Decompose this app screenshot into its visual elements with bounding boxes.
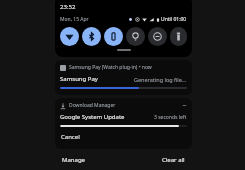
- staticText: Samsung Pay (Watch plug-in) • now: [69, 64, 152, 71]
- staticText: Download Manager: [69, 102, 116, 109]
- button[interactable]: Wi-Fi: [60, 27, 79, 46]
- button[interactable]: Flashlight: [170, 27, 187, 46]
- staticText: Until 01:00: [161, 16, 187, 23]
- button[interactable]: Cancel: [60, 132, 81, 142]
- staticText: 23:52: [60, 3, 76, 11]
- staticText: 3 seconds left: [154, 114, 187, 121]
- button[interactable]: Clear all: [160, 154, 187, 166]
- button[interactable]: Manage: [60, 154, 87, 166]
- button[interactable]: Auto rotate: [104, 27, 123, 46]
- staticText: Samsung Pay: [60, 75, 98, 83]
- staticText: Mon, 15 Apr: [60, 16, 89, 23]
- button[interactable]: Samsung Pay (Watch plug-in) • now: [55, 60, 192, 95]
- button[interactable]: Battery saver: [126, 27, 145, 46]
- button[interactable]: Bluetooth: [82, 27, 101, 46]
- button[interactable]: Do not disturb: [148, 27, 167, 46]
- staticText: Cancel: [61, 133, 80, 141]
- staticText: Generating log file...: [134, 76, 187, 83]
- staticText: Google System Update: [60, 113, 125, 121]
- staticText: Manage: [62, 156, 85, 164]
- staticText: Clear all: [162, 156, 185, 164]
- button[interactable]: Download Manager: [55, 98, 192, 149]
